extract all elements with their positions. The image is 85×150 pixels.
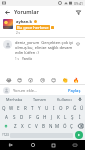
button[interactable]: H <box>41 112 48 121</box>
button[interactable]: Recents <box>43 140 64 150</box>
button[interactable]: E <box>15 103 22 112</box>
button[interactable]: G <box>34 112 41 121</box>
staticText: T <box>31 105 34 111</box>
staticText: E <box>17 105 20 111</box>
button[interactable]: F <box>26 112 34 121</box>
button[interactable]: D <box>18 112 26 121</box>
button[interactable]: O <box>57 103 64 112</box>
staticText: K <box>57 114 60 120</box>
staticText: 09:41 <box>74 1 83 6</box>
button[interactable]: ?123 <box>1 130 10 140</box>
button[interactable]: Kullanıcı <box>52 95 77 103</box>
button[interactable]: L <box>62 112 69 121</box>
button[interactable]: V <box>33 121 40 130</box>
button[interactable]: Merhaba <box>2 95 27 103</box>
button[interactable]: R <box>22 103 29 112</box>
staticText: G <box>36 114 40 120</box>
staticText: Tamam <box>33 97 47 102</box>
staticText: Ü <box>80 105 84 111</box>
staticText: Yorum ekle... <box>13 88 38 93</box>
button[interactable]: Send <box>75 131 83 139</box>
button[interactable]: A <box>2 112 10 121</box>
staticText: ?123 <box>2 133 9 137</box>
button[interactable]: Z <box>11 121 19 130</box>
button[interactable]: Back <box>3 8 11 16</box>
staticText: H <box>43 114 47 120</box>
button[interactable]: N <box>47 121 54 130</box>
staticText: R <box>24 105 27 111</box>
staticText: Ç <box>70 123 73 129</box>
button[interactable]: Q <box>0 103 8 112</box>
staticText: V <box>35 123 38 129</box>
button[interactable]: M <box>54 121 61 130</box>
button[interactable]: Ş <box>69 112 76 121</box>
button[interactable]: ayhan.k <box>0 17 85 37</box>
button[interactable]: 👏 <box>61 76 69 84</box>
button[interactable]: P <box>64 103 71 112</box>
staticText: P <box>66 105 69 111</box>
button[interactable]: X <box>19 121 26 130</box>
button[interactable]: deniz_yorum Gerçekten çok iyi <box>0 38 85 63</box>
staticText: İ <box>79 114 81 120</box>
button[interactable]: Ğ <box>71 103 78 112</box>
button[interactable]: Tamam <box>27 95 52 103</box>
staticText: X <box>21 123 24 129</box>
button[interactable]: B <box>40 121 47 130</box>
button[interactable]: Yanıtla <box>22 57 32 61</box>
button[interactable]: Shift <box>0 121 11 130</box>
staticText: olmuş bu, elinize sağlık devam <box>15 45 73 50</box>
staticText: ayhan.k <box>16 19 32 24</box>
staticText: C <box>28 123 31 129</box>
button[interactable]: Hide keyboard <box>64 140 85 150</box>
staticText: J <box>51 114 53 120</box>
button[interactable]: İ <box>76 112 83 121</box>
button[interactable]: Back <box>0 140 22 150</box>
button[interactable]: Ç <box>68 121 75 130</box>
staticText: Ö <box>63 123 67 129</box>
staticText: S <box>13 114 16 120</box>
staticText: O <box>59 105 63 111</box>
button[interactable]: K <box>55 112 62 121</box>
button[interactable]: Like <box>74 40 82 48</box>
staticText: M <box>55 123 60 129</box>
staticText: 🔥 <box>73 77 80 83</box>
staticText: U <box>45 105 49 111</box>
button[interactable]: Voice input <box>77 95 83 103</box>
button[interactable]: Ö <box>61 121 68 130</box>
staticText: Ş <box>71 114 74 120</box>
button[interactable]: Home <box>22 140 43 150</box>
staticText: F <box>29 114 32 120</box>
button[interactable]: 😮 <box>27 76 35 84</box>
button[interactable]: S <box>10 112 18 121</box>
button[interactable]: Yorum ekle... <box>13 88 67 93</box>
button[interactable]: Ü <box>78 103 85 112</box>
staticText: 😮 <box>28 77 34 83</box>
staticText: Merhaba <box>6 97 23 102</box>
staticText: Yanıtla <box>22 57 32 61</box>
button[interactable]: Backspace <box>75 121 85 130</box>
button[interactable]: Y <box>36 103 43 112</box>
button[interactable]: 🔥 <box>72 76 80 84</box>
button[interactable]: Filter <box>74 8 82 16</box>
button[interactable]: 😂 <box>5 76 13 84</box>
staticText: Ğ <box>73 105 77 111</box>
button[interactable]: T <box>29 103 36 112</box>
staticText: D <box>20 114 24 120</box>
button[interactable]: C <box>26 121 33 130</box>
button[interactable]: W <box>8 103 15 112</box>
staticText: 😂 <box>6 77 12 83</box>
button[interactable]: 😍 <box>16 76 24 84</box>
staticText: 1 s <box>15 57 19 61</box>
button[interactable]: 😢 <box>39 76 47 84</box>
button[interactable]: J <box>48 112 55 121</box>
staticText: Y <box>38 105 41 111</box>
staticText: Z <box>14 123 17 129</box>
staticText: 😍 <box>17 77 23 83</box>
button[interactable]: U <box>43 103 50 112</box>
button[interactable]: I <box>50 103 57 112</box>
staticText: W <box>9 105 14 111</box>
button[interactable]: Paylaş <box>67 88 82 93</box>
staticText: L <box>64 114 67 120</box>
button[interactable]: 😊 <box>50 76 58 84</box>
